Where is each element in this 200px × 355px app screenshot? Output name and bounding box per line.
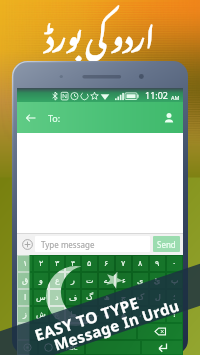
button[interactable]: ی <box>133 273 148 288</box>
button[interactable]: Send <box>153 236 180 252</box>
staticText: ۷ <box>121 259 126 268</box>
staticText: اردو کی بورڈ <box>45 0 155 69</box>
button[interactable]: س <box>34 290 48 305</box>
staticText: ۔ <box>155 310 160 319</box>
staticText: گ <box>86 293 94 302</box>
staticText: ۲ <box>39 259 44 268</box>
button[interactable]: ء <box>116 273 131 288</box>
button[interactable]: Emoji <box>39 341 58 354</box>
staticText: ئ <box>154 276 161 285</box>
button[interactable]: ر <box>66 273 80 288</box>
staticText: ۹ <box>155 259 160 268</box>
staticText: Message In Urdu <box>51 295 182 355</box>
staticText: 11:02 <box>145 89 169 101</box>
button[interactable]: ۵ <box>82 256 97 271</box>
button[interactable]: د <box>50 290 64 305</box>
button[interactable]: ھ <box>99 290 114 305</box>
staticText: م <box>121 310 126 319</box>
staticText: To: <box>48 112 61 124</box>
staticText: ت <box>86 276 94 285</box>
button[interactable]: Add attachment <box>19 236 35 252</box>
staticText: ۱ <box>23 259 28 268</box>
staticText: پ <box>171 276 179 285</box>
staticText: AM <box>171 94 180 101</box>
button[interactable]: گ <box>82 290 97 305</box>
staticText: ش <box>36 310 46 319</box>
button[interactable]: Type message <box>35 236 150 252</box>
button[interactable]: Choose contact <box>160 109 178 127</box>
staticText: Send <box>157 239 176 250</box>
staticText: ھ <box>104 293 110 302</box>
staticText: د <box>55 293 59 302</box>
button[interactable]: ے <box>99 273 114 288</box>
staticText: ن <box>104 310 110 319</box>
button[interactable]: ک <box>133 290 148 305</box>
staticText: ے <box>104 276 109 285</box>
button[interactable]: ، <box>133 307 148 322</box>
button[interactable]: Symbols <box>18 324 136 339</box>
staticText: ف <box>69 293 78 302</box>
staticText: ۵ <box>87 259 92 268</box>
button[interactable]: ABC <box>60 341 84 354</box>
button[interactable]: ۸ <box>133 256 148 271</box>
button[interactable]: ش <box>34 307 48 322</box>
staticText: ط <box>69 310 77 319</box>
staticText: ا <box>24 293 27 302</box>
staticText: ء <box>122 276 126 285</box>
staticText: ی <box>137 276 144 285</box>
staticText: ل <box>155 293 161 302</box>
button[interactable]: و <box>34 273 48 288</box>
staticText: و <box>39 276 43 285</box>
button[interactable]: ۔ <box>150 307 165 322</box>
button[interactable]: ع <box>50 273 64 288</box>
button[interactable]: ۲ <box>34 256 48 271</box>
staticText: ؟ <box>172 310 177 319</box>
staticText: ، <box>139 310 142 319</box>
button[interactable]: Enter <box>142 341 182 354</box>
staticText: ک <box>137 293 145 302</box>
staticText: س <box>36 293 46 302</box>
button[interactable]: ب <box>82 307 97 322</box>
button[interactable]: ۴ <box>66 256 80 271</box>
staticText: ز <box>23 310 27 319</box>
button[interactable]: ۷ <box>116 256 131 271</box>
button[interactable]: ؛ <box>167 290 182 305</box>
button[interactable]: ئ <box>150 273 165 288</box>
staticText: ۳ <box>55 259 60 268</box>
staticText: ج <box>121 293 127 302</box>
staticText: ۴ <box>71 259 76 268</box>
button[interactable]: ت <box>82 273 97 288</box>
button[interactable]: ۹ <box>150 256 165 271</box>
button[interactable]: ؟ <box>167 307 182 322</box>
staticText: چ <box>54 310 60 319</box>
button[interactable]: ا <box>18 290 32 305</box>
button[interactable]: پ <box>167 273 182 288</box>
button[interactable]: چ <box>50 307 64 322</box>
staticText: Type message <box>41 239 95 250</box>
button[interactable]: Space <box>86 341 140 354</box>
staticText: ع <box>55 276 60 285</box>
staticText: ۸ <box>138 259 143 268</box>
button[interactable]: م <box>116 307 131 322</box>
button[interactable]: ن <box>99 307 114 322</box>
button[interactable]: ۶ <box>99 256 114 271</box>
button[interactable]: ق <box>18 273 32 288</box>
button[interactable]: ج <box>116 290 131 305</box>
button[interactable]: ط <box>66 307 80 322</box>
button[interactable]: ف <box>66 290 80 305</box>
button[interactable]: ۳ <box>50 256 64 271</box>
button[interactable]: ۱ <box>18 256 32 271</box>
button[interactable]: ل <box>150 290 165 305</box>
button[interactable]: Settings <box>18 341 37 354</box>
staticText: EASY TO TYPE <box>32 291 141 344</box>
staticText: ABC <box>66 344 78 352</box>
staticText: ۰ <box>172 259 177 268</box>
button[interactable]: ز <box>18 307 32 322</box>
button[interactable]: Backspace <box>138 324 182 339</box>
button[interactable]: ۰ <box>167 256 182 271</box>
staticText: ق <box>22 276 29 285</box>
staticText: ؛ <box>173 293 176 302</box>
staticText: ب <box>86 310 94 319</box>
button[interactable]: Back <box>22 109 40 127</box>
staticText: ر <box>71 276 75 285</box>
